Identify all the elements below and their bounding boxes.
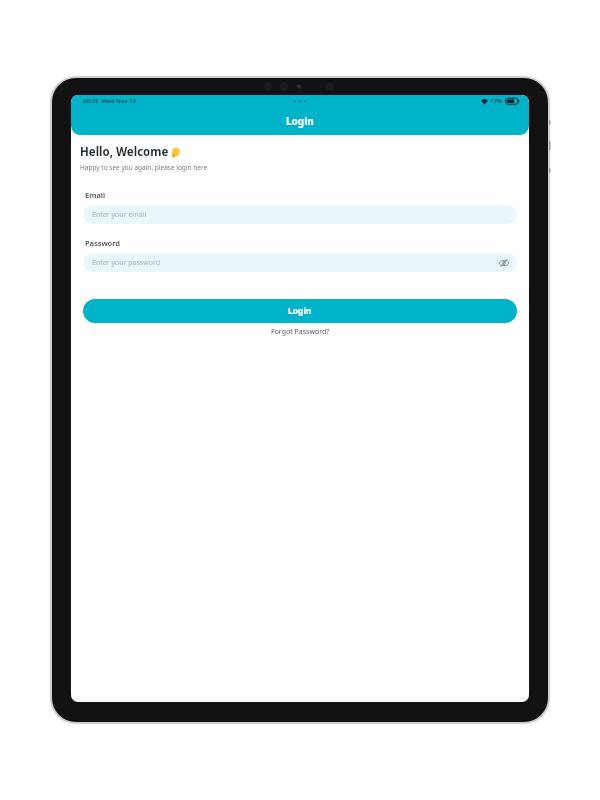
button[interactable]: Login	[83, 299, 517, 323]
button[interactable]: Enter your password	[83, 253, 517, 272]
button[interactable]: Forgot Password?	[271, 327, 330, 337]
staticText: Login	[288, 305, 312, 317]
staticText: 77%	[490, 97, 503, 105]
staticText: Email	[85, 190, 106, 200]
staticText: 00:35 Wed Nov 13	[83, 97, 136, 105]
staticText: Happy to see you again, please login her…	[80, 163, 208, 172]
staticText: Hello, Welcome	[80, 144, 169, 160]
staticText: Password	[85, 238, 121, 248]
staticText: Enter your email	[92, 210, 147, 220]
staticText: Login	[286, 114, 314, 128]
button[interactable]: Enter your email	[83, 205, 517, 224]
staticText: Enter your password	[92, 258, 160, 268]
